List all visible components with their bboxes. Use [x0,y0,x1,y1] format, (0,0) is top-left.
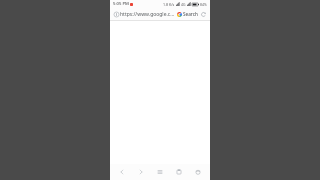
button[interactable]: Back [115,165,129,179]
staticText: Search [183,11,198,17]
button[interactable]: Reload page [200,11,207,18]
staticText: 1.8 K/s [163,2,175,7]
staticText: 5:05 PM [113,1,129,7]
button[interactable]: Forward [134,165,148,179]
button[interactable]: Site information [113,11,119,17]
staticText: 4G [181,2,186,7]
button[interactable]: Menu [153,165,167,179]
staticText: 84% [200,2,207,7]
staticText: https://www.google.co.in [120,11,175,18]
button[interactable]: https://www.google.co.in [120,11,175,18]
button[interactable]: Search [177,11,198,17]
button[interactable]: Tabs [172,165,186,179]
button[interactable]: Home [191,165,205,179]
